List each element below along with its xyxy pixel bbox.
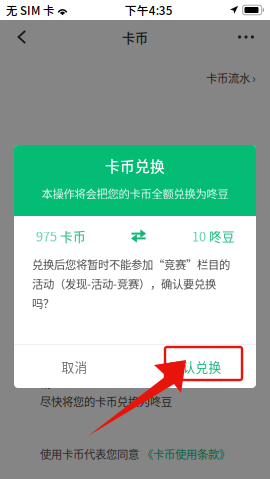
- staticText: 活动（发现-活动-竞赛），确认要兑换: [32, 275, 216, 292]
- button[interactable]: 返回: [4, 20, 40, 54]
- button[interactable]: 确认兑换: [135, 345, 256, 388]
- staticText: 尽快将您的卡币兑换为咚豆: [40, 393, 172, 410]
- staticText: 咚豆: [209, 227, 235, 245]
- staticText: 本操作将会把您的卡币全额兑换为咚豆: [41, 185, 228, 202]
- button[interactable]: 更多: [226, 20, 266, 54]
- staticText: 卡币: [60, 227, 86, 245]
- staticText: 10: [192, 227, 206, 245]
- staticText: 《卡币使用条款》: [142, 446, 230, 462]
- staticText: 下午4:35: [125, 1, 173, 18]
- button[interactable]: 卡币流水: [0, 54, 270, 86]
- staticText: 无 SIM 卡: [6, 2, 54, 18]
- staticText: 卡币兑换: [105, 155, 165, 176]
- staticText: 取消: [61, 357, 87, 376]
- staticText: ›: [252, 69, 256, 86]
- button[interactable]: 《卡币使用条款》: [142, 446, 230, 462]
- staticText: 确认兑换: [169, 357, 221, 376]
- staticText: 卡币将于2019年1月1日全部清零，请: [40, 358, 208, 391]
- staticText: 卡币流水: [206, 69, 250, 86]
- button[interactable]: 取消: [14, 345, 135, 388]
- staticText: 975: [36, 227, 57, 245]
- staticText: 吗？: [32, 295, 54, 311]
- staticText: 使用卡币代表您同意: [40, 446, 139, 462]
- staticText: 卡币: [122, 27, 148, 46]
- staticText: 兑换后您将暂时不能参加“竞赛”栏目的: [32, 256, 230, 272]
